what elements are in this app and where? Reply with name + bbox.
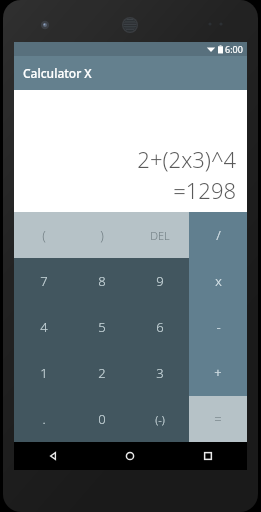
staticText: 9 bbox=[156, 272, 164, 290]
staticText: ( bbox=[42, 226, 46, 244]
staticText: 2+(2x3)^4 bbox=[137, 144, 236, 174]
staticText: 1 bbox=[40, 364, 48, 382]
button[interactable]: 8 bbox=[73, 258, 131, 304]
staticText: 4 bbox=[40, 318, 48, 336]
button[interactable]: 6 bbox=[131, 304, 189, 350]
button[interactable]: 4 bbox=[14, 304, 73, 350]
staticText: 6 bbox=[156, 318, 164, 336]
button[interactable]: Home bbox=[91, 442, 169, 470]
staticText: 2 bbox=[98, 364, 106, 382]
button[interactable]: (-) bbox=[131, 396, 189, 442]
staticText: - bbox=[216, 318, 221, 336]
button[interactable]: DEL bbox=[131, 212, 189, 258]
staticText: = bbox=[214, 410, 222, 428]
staticText: / bbox=[216, 226, 221, 244]
staticText: Calculator X bbox=[23, 65, 92, 81]
staticText: . bbox=[42, 410, 46, 428]
button[interactable]: Recent apps bbox=[169, 442, 247, 470]
staticText: 7 bbox=[40, 272, 48, 290]
button[interactable]: 9 bbox=[131, 258, 189, 304]
staticText: 0 bbox=[98, 410, 106, 428]
button[interactable]: - bbox=[189, 304, 247, 350]
button[interactable]: / bbox=[189, 212, 247, 258]
staticText: (-) bbox=[155, 412, 165, 427]
button[interactable]: + bbox=[189, 350, 247, 396]
button[interactable]: 2 bbox=[73, 350, 131, 396]
staticText: + bbox=[214, 364, 222, 382]
staticText: 5 bbox=[98, 318, 106, 336]
staticText: =1298 bbox=[173, 175, 236, 205]
button[interactable]: 5 bbox=[73, 304, 131, 350]
button[interactable]: 7 bbox=[14, 258, 73, 304]
staticText: x bbox=[215, 272, 222, 290]
staticText: DEL bbox=[150, 228, 170, 243]
button[interactable]: 1 bbox=[14, 350, 73, 396]
button[interactable]: Back bbox=[14, 442, 91, 470]
staticText: 8 bbox=[98, 272, 106, 290]
button[interactable]: x bbox=[189, 258, 247, 304]
staticText: ) bbox=[100, 226, 104, 244]
staticText: 3 bbox=[156, 364, 164, 382]
button[interactable]: 0 bbox=[73, 396, 131, 442]
staticText: 6:00 bbox=[225, 43, 243, 55]
button[interactable]: 3 bbox=[131, 350, 189, 396]
